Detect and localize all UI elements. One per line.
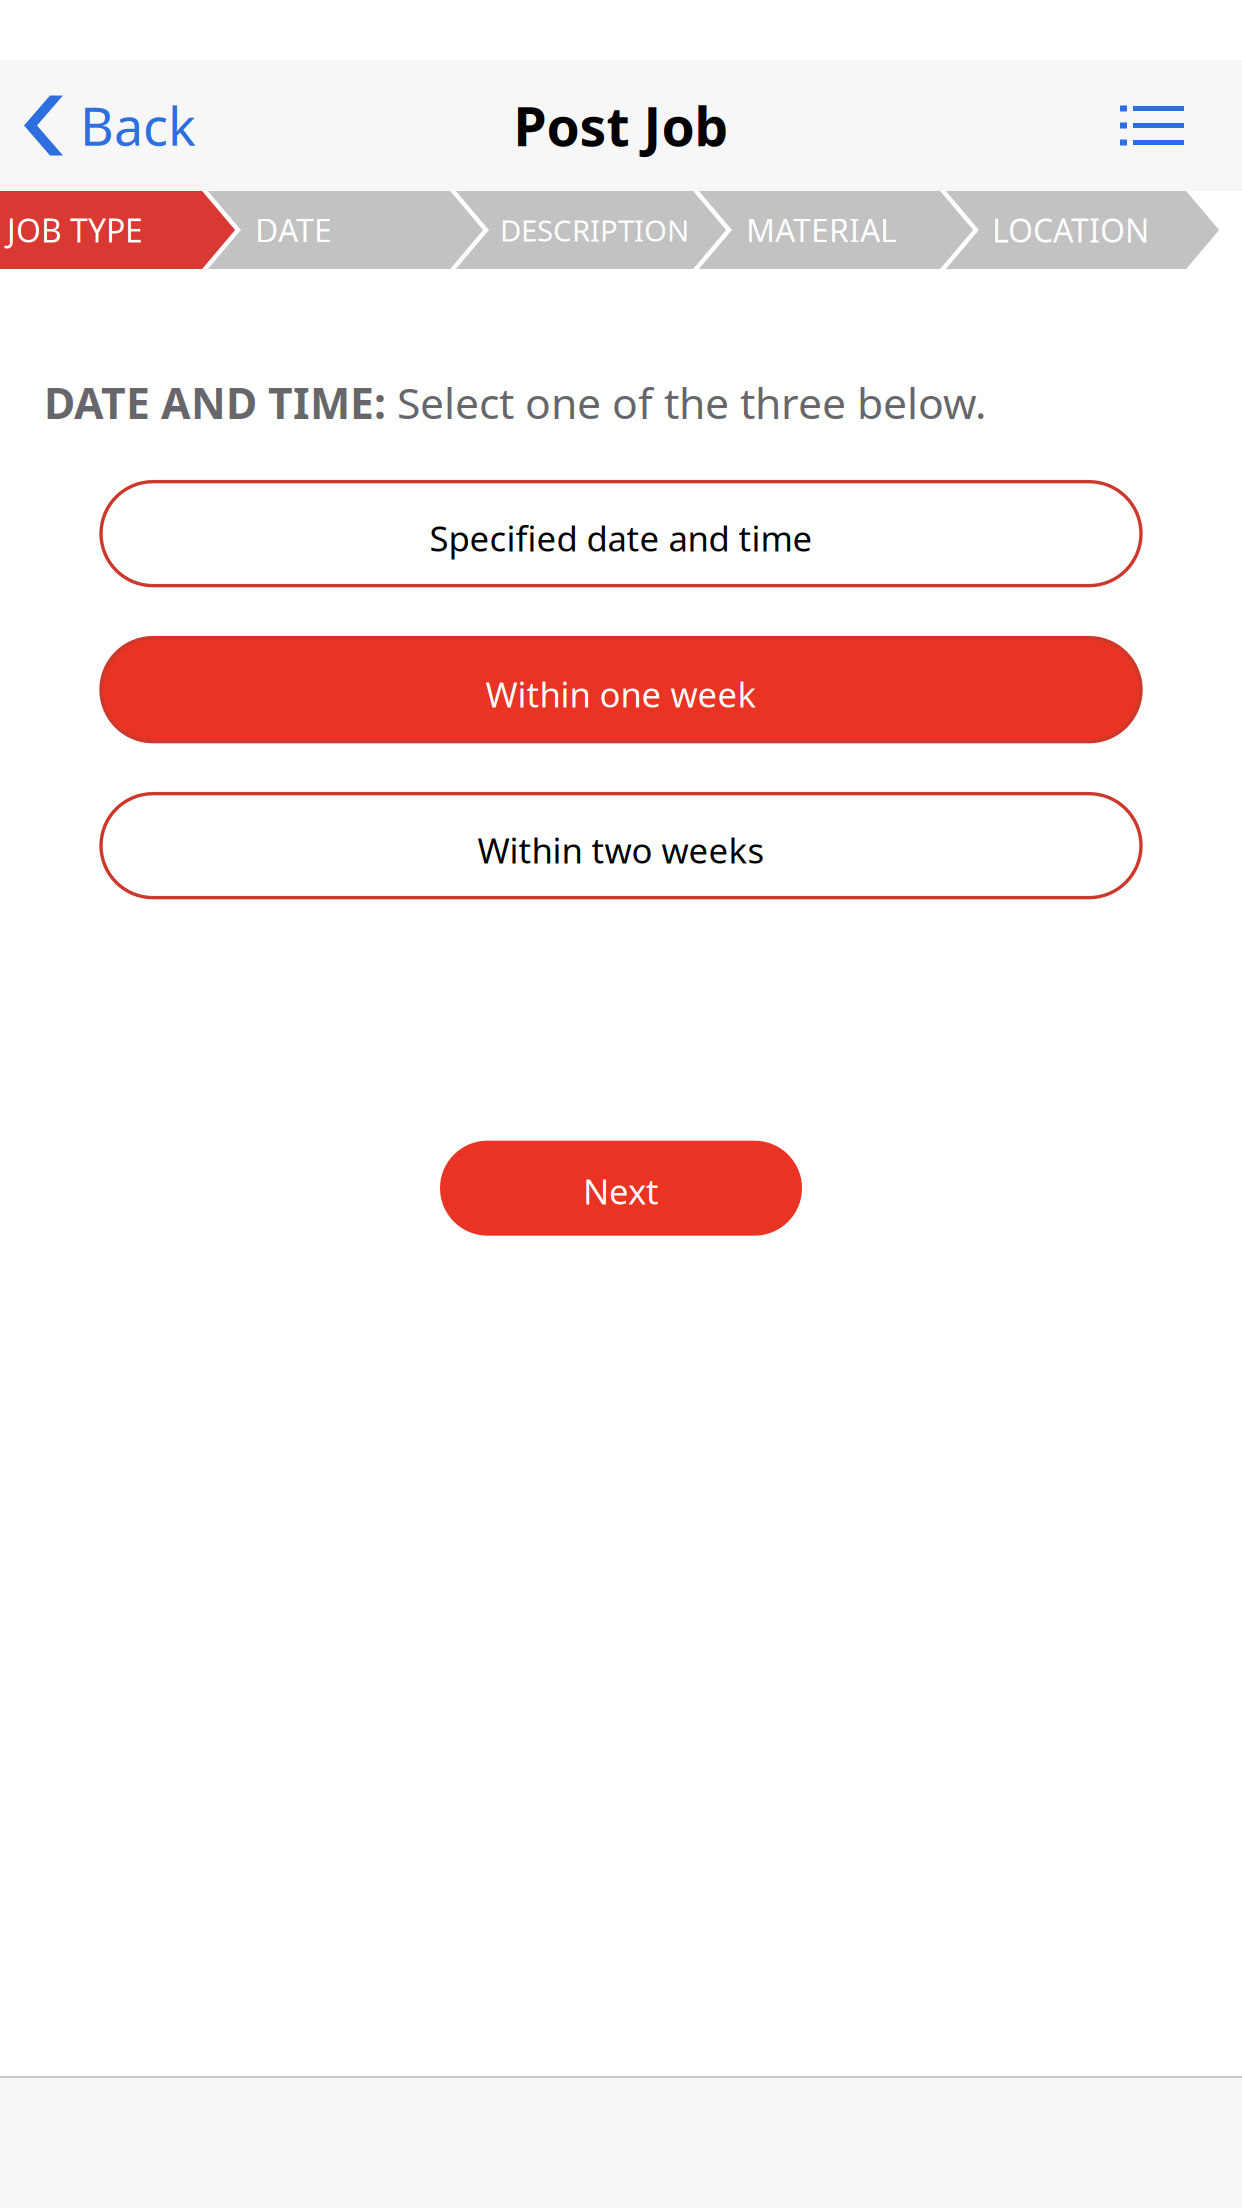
staticText: Within two weeks (477, 827, 764, 873)
button[interactable]: Within one week (101, 638, 1141, 742)
staticText: DATE (255, 209, 332, 251)
button[interactable]: LOCATION (976, 191, 1222, 269)
staticText: Next (583, 1168, 659, 1214)
button[interactable]: Within two weeks (101, 794, 1141, 898)
button[interactable]: Menu (1080, 65, 1242, 185)
staticText: Specified date and time (429, 515, 812, 561)
button[interactable]: JOB TYPE (0, 191, 238, 269)
staticText: Post Job (513, 90, 728, 161)
button[interactable]: DESCRIPTION (486, 191, 729, 269)
staticText: DATE AND TIME: (44, 374, 386, 431)
staticText: Within one week (485, 671, 756, 717)
button[interactable]: DATE (238, 191, 486, 269)
button[interactable]: Next (440, 1141, 802, 1236)
staticText: MATERIAL (746, 209, 897, 251)
staticText: JOB TYPE (7, 209, 143, 251)
staticText: DESCRIPTION (500, 210, 689, 249)
button[interactable]: Back (0, 63, 216, 188)
staticText: Back (80, 91, 196, 160)
button[interactable]: MATERIAL (729, 191, 976, 269)
staticText: Select one of the three below. (386, 374, 986, 431)
button[interactable]: Specified date and time (101, 482, 1141, 586)
staticText: LOCATION (992, 209, 1149, 251)
